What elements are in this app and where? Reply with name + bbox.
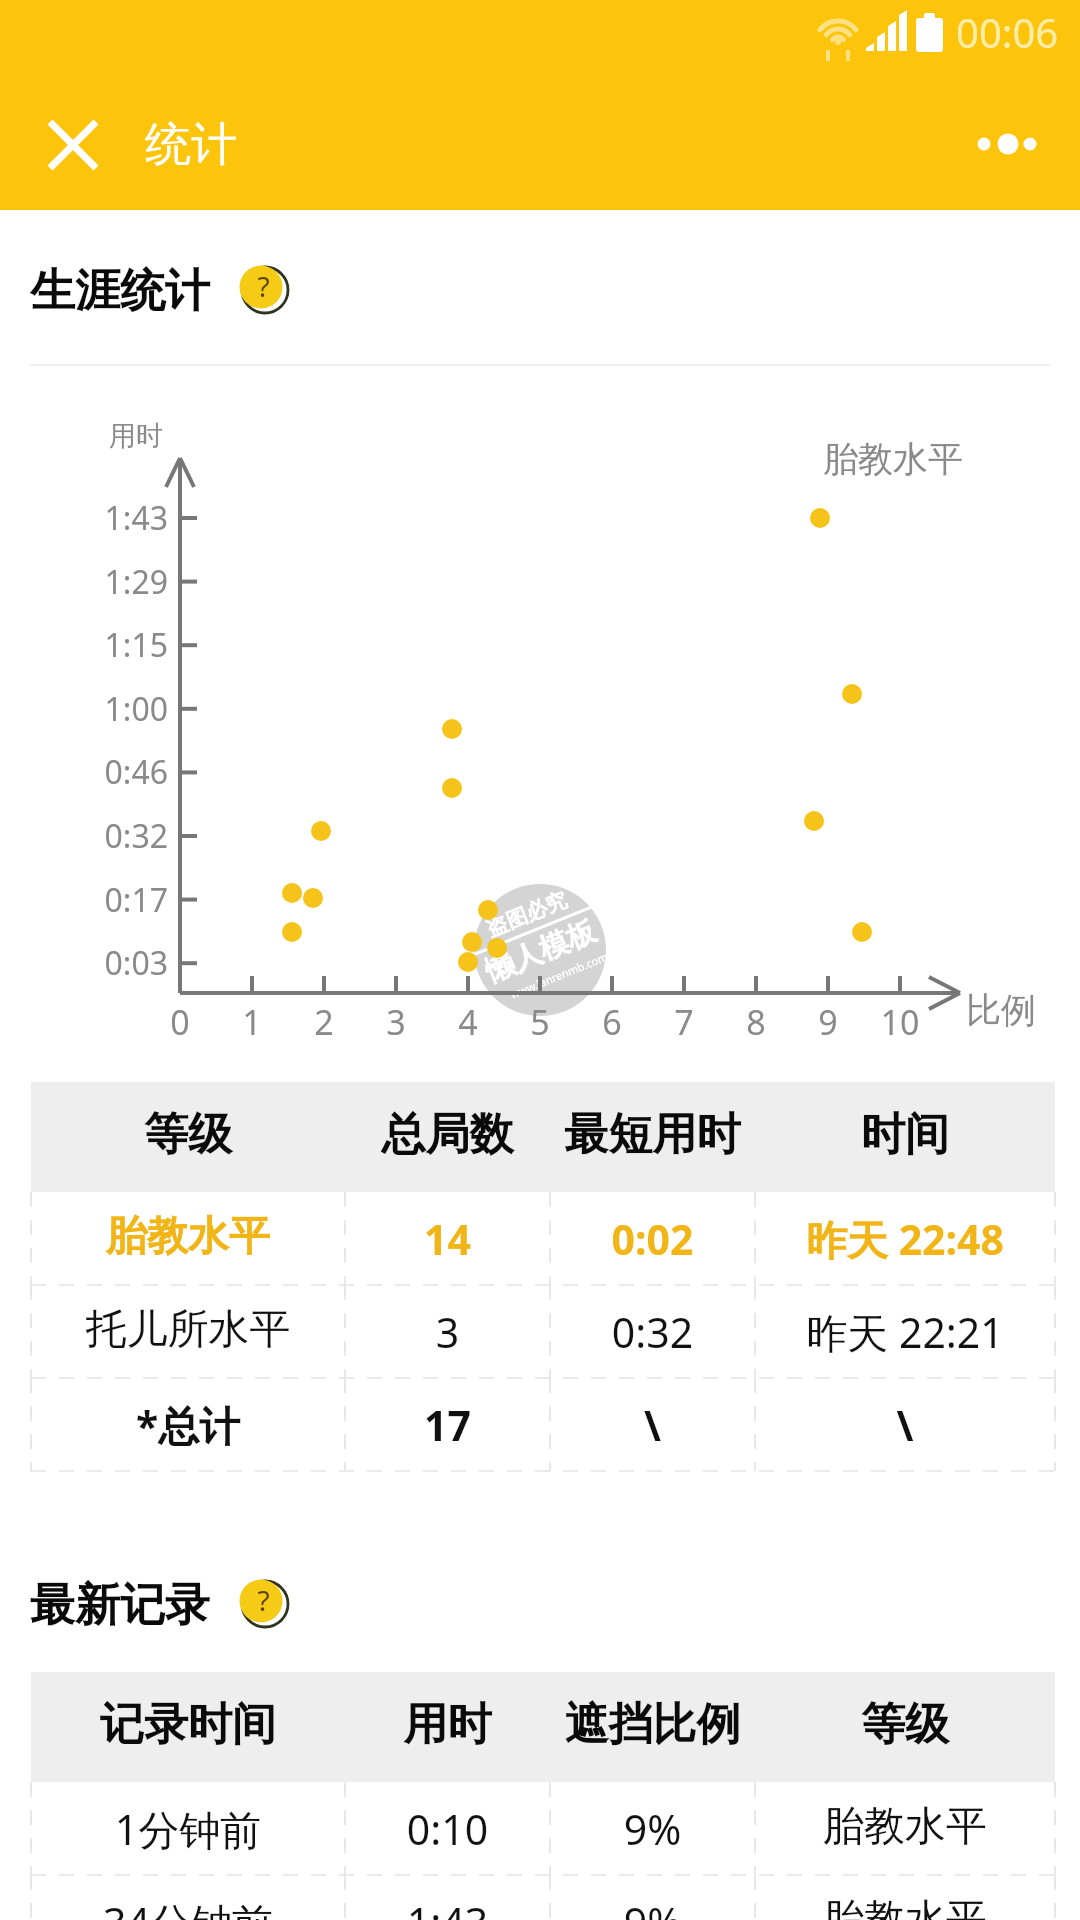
staticText: 记录时间 — [31, 1697, 345, 1752]
staticText: 00:06 — [956, 5, 1059, 59]
staticText: 0:32 — [550, 1304, 755, 1360]
staticText: 7 — [654, 999, 714, 1045]
staticText: 最新记录 — [30, 1577, 210, 1634]
staticText: 生涯统计 — [30, 263, 210, 320]
staticText: 0:03 — [90, 941, 168, 985]
staticText: 胎教水平 — [755, 1801, 1055, 1853]
staticText: 9% — [550, 1801, 755, 1857]
staticText: 3 — [345, 1304, 550, 1360]
staticText: 5 — [510, 999, 570, 1045]
staticText: 昨天 22:21 — [755, 1304, 1055, 1360]
staticText: 懒人模板 — [461, 905, 620, 998]
staticText: 昨天 22:48 — [755, 1211, 1055, 1267]
staticText: 0:02 — [550, 1211, 755, 1267]
staticText: 1:00 — [90, 687, 168, 731]
staticText: 0:32 — [90, 814, 168, 858]
staticText: 17 — [345, 1397, 550, 1453]
staticText: 1:15 — [90, 623, 168, 667]
staticText: 1分钟前 — [31, 1801, 345, 1857]
staticText: www.lanrenmb.com — [484, 939, 634, 1011]
staticText: 14 — [345, 1211, 550, 1267]
staticText: 等级 — [31, 1107, 345, 1162]
staticText: 6 — [582, 999, 642, 1045]
staticText: 34分钟前 — [31, 1894, 345, 1920]
staticText: 比例 — [966, 988, 1036, 1032]
staticText: 盗图必究 — [449, 873, 604, 956]
staticText: \ — [755, 1397, 1055, 1453]
staticText: *总计 — [31, 1397, 345, 1453]
button[interactable]: Help — [235, 1575, 289, 1629]
staticText: ? — [257, 267, 270, 305]
staticText: \ — [550, 1397, 755, 1453]
staticText: 托儿所水平 — [31, 1304, 345, 1356]
staticText: 统计 — [145, 116, 237, 174]
staticText: 总局数 — [345, 1107, 550, 1162]
staticText: 10 — [870, 999, 930, 1045]
staticText: 1:43 — [345, 1894, 550, 1920]
staticText: 时间 — [755, 1107, 1055, 1162]
staticText: 1 — [222, 999, 282, 1045]
staticText: 0:46 — [90, 750, 168, 794]
staticText: 胎教水平 — [823, 437, 963, 481]
staticText: 最短用时 — [550, 1107, 755, 1162]
staticText: 8 — [726, 999, 786, 1045]
staticText: 1:29 — [90, 560, 168, 604]
staticText: 2 — [294, 999, 354, 1045]
staticText: 9% — [550, 1894, 755, 1920]
staticText: 3 — [366, 999, 426, 1045]
staticText: 0 — [150, 999, 210, 1045]
staticText: 遮挡比例 — [550, 1697, 755, 1752]
button[interactable]: Help — [235, 261, 289, 315]
staticText: 0:17 — [90, 878, 168, 922]
staticText: 等级 — [755, 1697, 1055, 1752]
staticText: 4 — [438, 999, 498, 1045]
staticText: 9 — [798, 999, 858, 1045]
staticText: ? — [257, 1581, 270, 1619]
staticText: 1:43 — [90, 496, 168, 540]
button[interactable]: More options — [960, 105, 1040, 185]
button[interactable]: Close — [33, 105, 113, 185]
staticText: 用时 — [345, 1697, 550, 1752]
staticText: 胎教水平 — [755, 1894, 1055, 1920]
staticText: 0:10 — [345, 1801, 550, 1857]
staticText: 用时 — [109, 419, 163, 453]
staticText: 胎教水平 — [31, 1211, 345, 1263]
